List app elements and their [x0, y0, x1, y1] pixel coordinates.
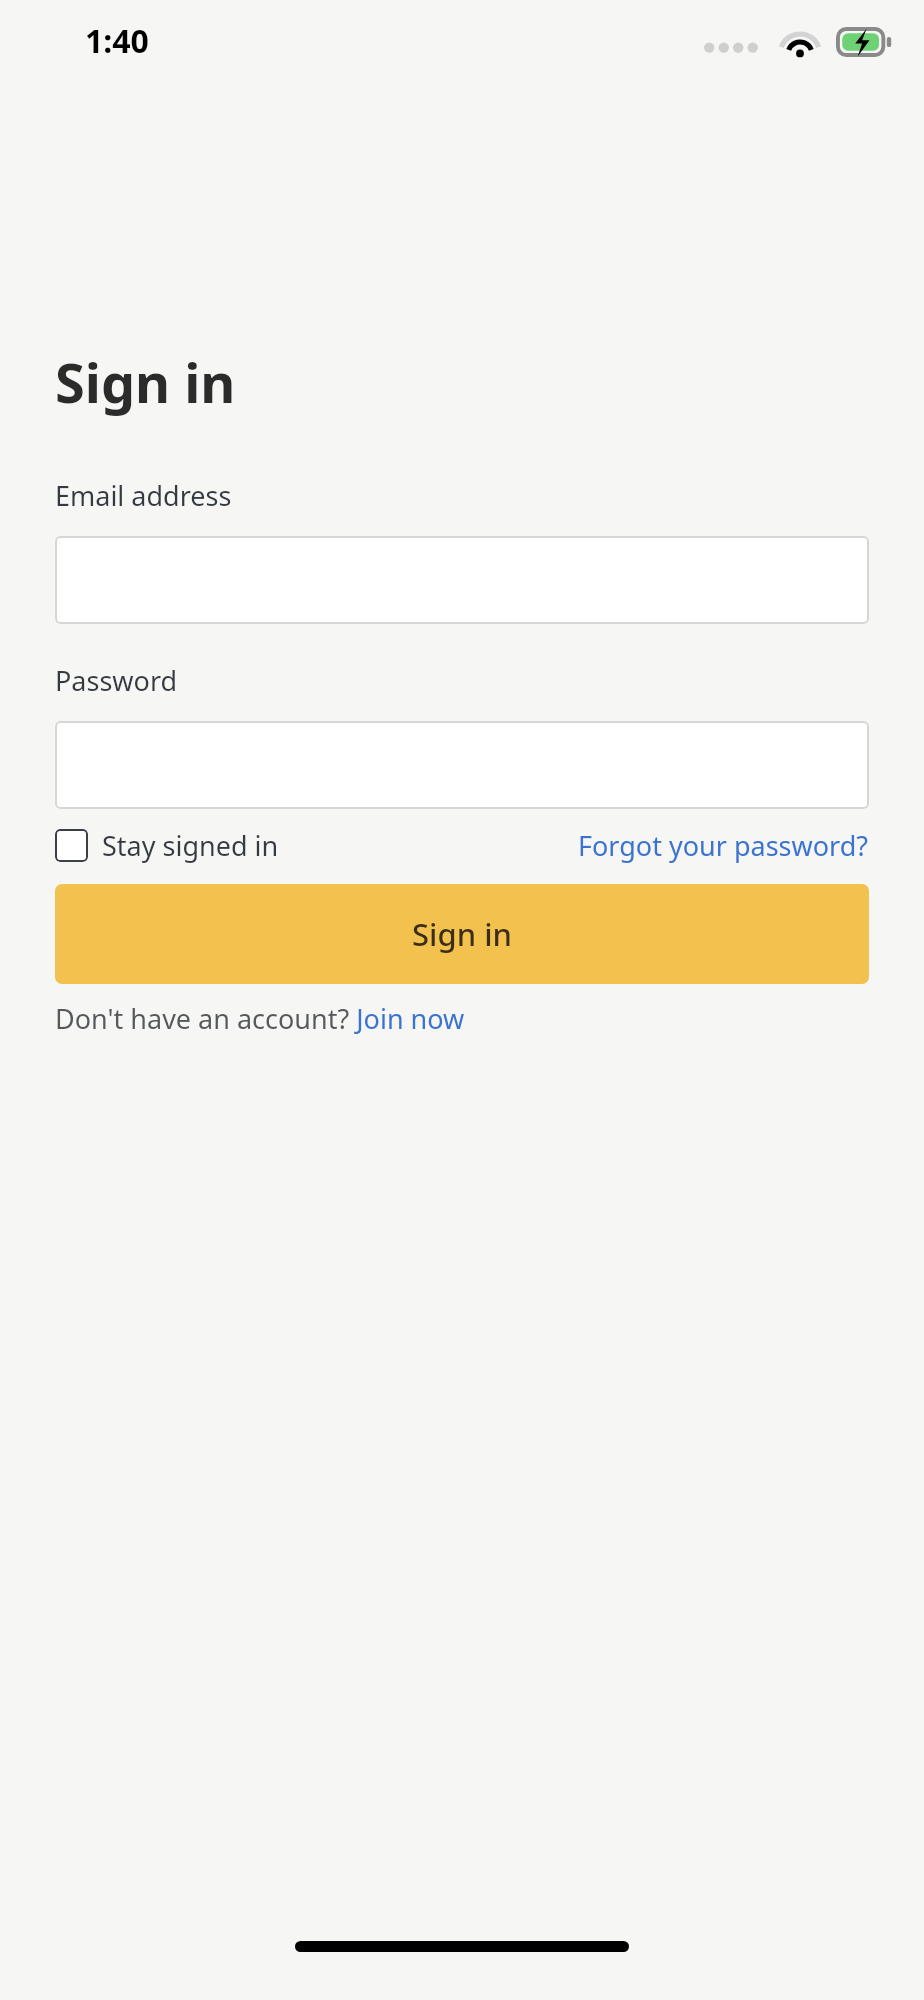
staticText: Sign in	[55, 345, 236, 419]
staticText: Stay signed in	[102, 827, 279, 864]
button[interactable]	[55, 721, 869, 809]
button[interactable]	[55, 536, 869, 624]
staticText: Don't have an account? Join now	[55, 1000, 465, 1037]
staticText: Email address	[55, 477, 232, 514]
staticText: Forgot your password?	[578, 827, 869, 864]
button[interactable]: Forgot your password?	[578, 827, 869, 864]
staticText: Sign in	[412, 913, 512, 955]
button[interactable]: Stay signed in	[55, 827, 283, 864]
button[interactable]: Don't have an account? Join now	[55, 1000, 465, 1037]
button[interactable]: Sign in	[55, 884, 869, 984]
staticText: Password	[55, 662, 178, 699]
staticText: 1:40	[85, 19, 149, 63]
